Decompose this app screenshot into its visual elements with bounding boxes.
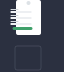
button[interactable] <box>12 27 32 30</box>
